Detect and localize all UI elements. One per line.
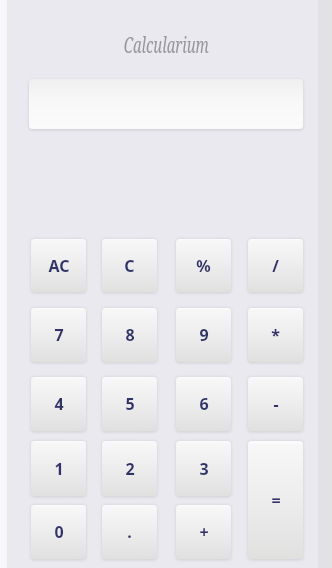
button[interactable]: 8 [102,308,157,362]
button[interactable]: 6 [176,377,231,431]
button[interactable]: = [248,441,303,559]
staticText: * [271,324,280,346]
button[interactable]: 0 [31,505,86,559]
button[interactable]: C [102,239,157,292]
staticText: % [196,255,211,277]
staticText: 7 [54,324,64,346]
staticText: . [127,521,132,543]
staticText: 2 [125,458,135,480]
staticText: Calcularium [124,29,209,59]
staticText: AC [48,255,70,277]
button[interactable]: 1 [31,441,86,496]
button[interactable]: 4 [31,377,86,431]
button[interactable]: . [102,505,157,559]
staticText: - [273,393,279,415]
staticText: 5 [125,393,135,415]
button[interactable]: - [248,377,303,431]
button[interactable]: + [176,505,231,559]
staticText: 0 [54,521,64,543]
staticText: + [199,521,209,543]
staticText: 4 [54,393,64,415]
button[interactable]: % [176,239,231,292]
staticText: 1 [54,458,64,480]
button[interactable]: 2 [102,441,157,496]
staticText: 3 [199,458,209,480]
staticText: C [124,255,135,277]
button[interactable]: / [248,239,303,292]
staticText: / [272,255,279,277]
button[interactable]: * [248,308,303,362]
staticText: 6 [199,393,209,415]
button[interactable]: AC [31,239,86,292]
button[interactable]: 9 [176,308,231,362]
staticText: 9 [199,324,209,346]
button[interactable]: 3 [176,441,231,496]
button[interactable]: 5 [102,377,157,431]
button[interactable]: 7 [31,308,86,362]
staticText: = [271,489,281,511]
staticText: 8 [125,324,135,346]
